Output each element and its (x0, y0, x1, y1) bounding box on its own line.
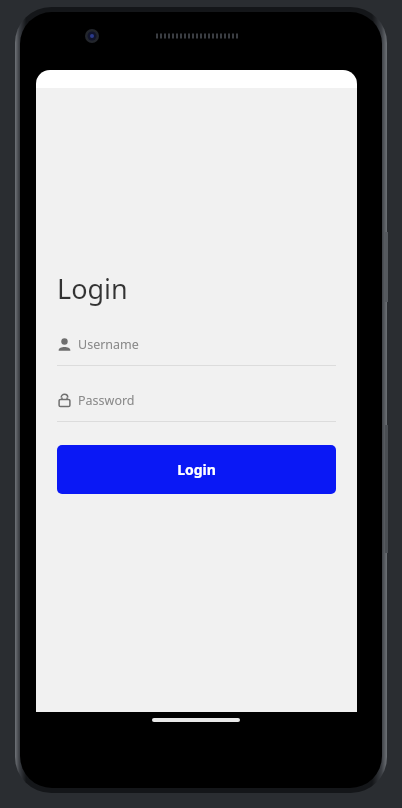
staticText: Login (57, 270, 128, 307)
staticText: Login (177, 460, 216, 479)
staticText: Password (78, 392, 135, 409)
button[interactable]: Password (57, 388, 336, 422)
button[interactable]: Username (57, 332, 336, 366)
button[interactable]: Login (57, 445, 336, 494)
staticText: Username (78, 336, 139, 353)
